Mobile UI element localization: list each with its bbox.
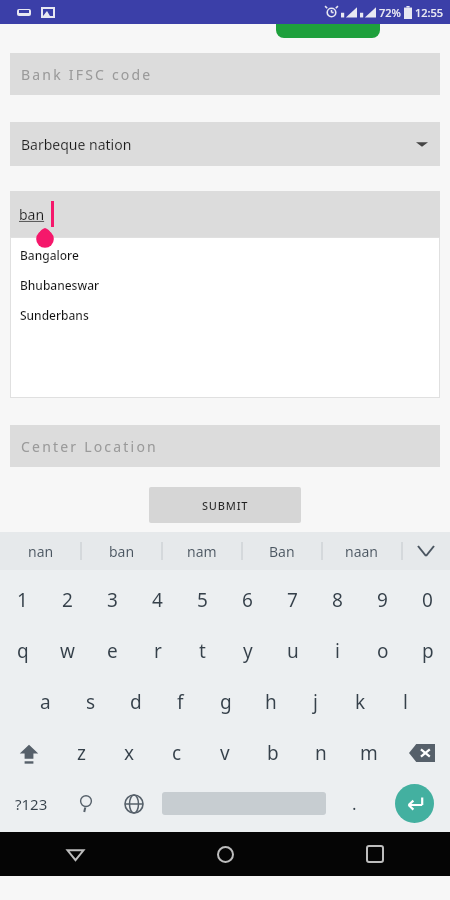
button[interactable]: e xyxy=(90,625,135,676)
staticText: e xyxy=(107,638,118,664)
button[interactable]: Change language xyxy=(110,778,158,829)
button[interactable]: Enter xyxy=(395,784,434,823)
staticText: Sunderbans xyxy=(20,307,89,323)
staticText: Bank IFSC code xyxy=(21,65,153,84)
button[interactable]: 0 xyxy=(405,574,450,625)
staticText: Barbeque nation xyxy=(21,135,132,154)
button[interactable]: i xyxy=(315,625,360,676)
button[interactable]: a xyxy=(22,676,68,727)
button[interactable]: o xyxy=(360,625,405,676)
staticText: p xyxy=(422,638,434,664)
button[interactable]: n xyxy=(297,727,345,778)
staticText: n xyxy=(315,740,327,766)
button[interactable]: ban xyxy=(10,191,440,237)
button[interactable]: m xyxy=(345,727,393,778)
button[interactable]: 9 xyxy=(360,574,405,625)
button[interactable]: 2 xyxy=(45,574,90,625)
staticText: Bhubaneswar xyxy=(20,277,100,293)
button[interactable]: v xyxy=(201,727,249,778)
staticText: 7 xyxy=(287,587,298,613)
button[interactable]: t xyxy=(180,625,225,676)
button[interactable]: g xyxy=(203,676,248,727)
button[interactable]: Bangalore xyxy=(10,247,440,263)
button[interactable]: b xyxy=(249,727,297,778)
button[interactable]: Emoji and comma xyxy=(62,778,110,829)
staticText: r xyxy=(154,638,162,664)
button[interactable]: d xyxy=(113,676,158,727)
button[interactable]: Ban xyxy=(242,532,322,570)
button[interactable]: q xyxy=(0,625,45,676)
button[interactable]: 4 xyxy=(135,574,180,625)
button[interactable]: Center Location xyxy=(10,425,440,467)
staticText: Center Location xyxy=(21,437,158,456)
staticText: 9 xyxy=(377,587,388,613)
staticText: z xyxy=(77,740,86,766)
staticText: x xyxy=(124,740,135,766)
button[interactable]: 1 xyxy=(0,574,45,625)
button[interactable]: naan xyxy=(322,532,402,570)
button[interactable]: Home xyxy=(150,832,300,876)
button[interactable]: Barbeque nation xyxy=(10,122,440,166)
staticText: d xyxy=(130,689,142,715)
button[interactable]: Backspace xyxy=(393,727,450,778)
button[interactable]: 3 xyxy=(90,574,135,625)
staticText: s xyxy=(86,689,96,715)
staticText: ?123 xyxy=(15,794,48,814)
button[interactable]: r xyxy=(135,625,180,676)
staticText: naan xyxy=(345,542,379,561)
button[interactable]: z xyxy=(57,727,105,778)
button[interactable]: u xyxy=(270,625,315,676)
staticText: 6 xyxy=(242,587,253,613)
staticText: w xyxy=(60,638,75,664)
button[interactable]: nam xyxy=(162,532,242,570)
staticText: a xyxy=(40,689,51,715)
button[interactable]: f xyxy=(158,676,203,727)
button[interactable]: Bank IFSC code xyxy=(10,53,440,95)
button[interactable]: Sunderbans xyxy=(10,307,440,323)
staticText: b xyxy=(267,740,279,766)
staticText: j xyxy=(313,689,318,715)
button[interactable]: 8 xyxy=(315,574,360,625)
button[interactable]: Back xyxy=(0,832,150,876)
staticText: . xyxy=(352,792,357,815)
button[interactable]: Bhubaneswar xyxy=(10,277,440,293)
button[interactable]: 7 xyxy=(270,574,315,625)
button[interactable]: p xyxy=(405,625,450,676)
button[interactable]: More suggestions xyxy=(402,532,450,570)
button[interactable]: SUBMIT xyxy=(149,487,301,523)
button[interactable]: ban xyxy=(81,532,162,570)
staticText: 72% xyxy=(379,5,401,20)
button[interactable]: Shift xyxy=(0,727,57,778)
button[interactable]: w xyxy=(45,625,90,676)
staticText: q xyxy=(17,638,29,664)
staticText: i xyxy=(335,638,340,664)
button[interactable]: ?123 xyxy=(0,778,62,829)
button[interactable]: 5 xyxy=(180,574,225,625)
staticText: SUBMIT xyxy=(202,498,249,513)
button[interactable]: j xyxy=(293,676,338,727)
button[interactable]: k xyxy=(338,676,383,727)
button[interactable]: y xyxy=(225,625,270,676)
staticText: g xyxy=(220,689,232,715)
staticText: 1 xyxy=(17,587,28,613)
staticText: k xyxy=(355,689,366,715)
staticText: 3 xyxy=(107,587,118,613)
staticText: c xyxy=(172,740,182,766)
staticText: 4 xyxy=(152,587,163,613)
button[interactable]: x xyxy=(105,727,153,778)
button[interactable]: 6 xyxy=(225,574,270,625)
button[interactable]: h xyxy=(248,676,293,727)
button[interactable]: l xyxy=(383,676,428,727)
staticText: 0 xyxy=(422,587,433,613)
staticText: u xyxy=(287,638,299,664)
button[interactable]: Recents xyxy=(300,832,450,876)
button[interactable]: . xyxy=(330,778,378,829)
staticText: nan xyxy=(28,542,54,561)
button[interactable]: s xyxy=(68,676,113,727)
button[interactable]: c xyxy=(153,727,201,778)
staticText: o xyxy=(377,638,389,664)
staticText: ban xyxy=(19,205,45,224)
button[interactable]: nan xyxy=(0,532,81,570)
staticText: f xyxy=(177,689,184,715)
